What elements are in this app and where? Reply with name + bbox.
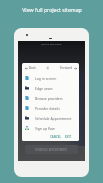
- button[interactable]: Log in screen: [25, 73, 79, 83]
- button[interactable]: Forward: [60, 66, 77, 70]
- button[interactable]: SCHEDULE APPOINTMENT: [25, 145, 78, 154]
- staticText: SCHEDULE APPOINTMENT: [35, 148, 68, 152]
- staticText: View full project sitemap: [22, 6, 82, 13]
- button[interactable]: EXIT: [64, 135, 73, 139]
- staticText: Browse providers: [35, 96, 63, 101]
- staticText: Forward: [60, 66, 73, 70]
- button[interactable]: Sign up flow: [25, 123, 79, 133]
- button[interactable]: Edge cases: [25, 83, 79, 93]
- staticText: Provider details: [35, 106, 60, 111]
- staticText: Schedule Appointment: [35, 116, 72, 121]
- button[interactable]: Provider details: [25, 103, 79, 113]
- staticText: QUEUE PROVIDER: [41, 42, 62, 45]
- button[interactable]: CANCEL: [49, 135, 62, 139]
- staticText: Edge cases: [35, 86, 53, 91]
- staticText: Back: [29, 66, 36, 70]
- button[interactable]: Back: [25, 66, 36, 70]
- staticText: CANCEL: [50, 135, 61, 139]
- button[interactable]: Refresh: [46, 66, 50, 70]
- button[interactable]: Schedule Appointment: [25, 113, 79, 123]
- staticText: Sign up flow: [35, 126, 55, 131]
- staticText: Log in screen: [35, 76, 57, 81]
- button[interactable]: Browse providers: [25, 93, 79, 103]
- staticText: EXIT: [65, 135, 72, 139]
